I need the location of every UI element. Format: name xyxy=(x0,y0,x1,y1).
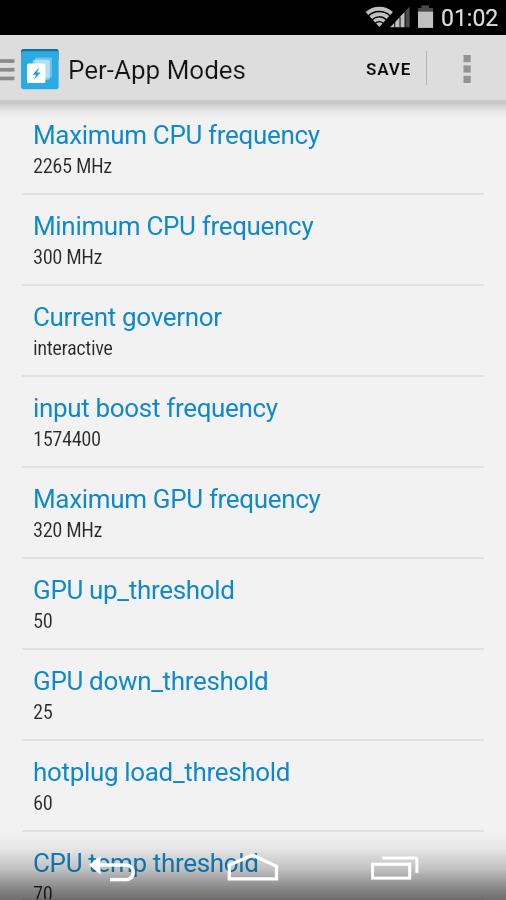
button[interactable]: Minimum CPU frequency xyxy=(0,194,506,285)
staticText: Per-App Modes xyxy=(68,55,247,85)
staticText: input boost frequency xyxy=(33,393,278,423)
button[interactable]: Maximum CPU frequency xyxy=(0,103,506,194)
staticText: Minimum CPU frequency xyxy=(33,211,314,241)
button[interactable]: GPU up_threshold xyxy=(0,558,506,649)
button[interactable]: Home xyxy=(169,831,338,900)
staticText: 01:02 xyxy=(441,5,499,32)
staticText: GPU up_threshold xyxy=(33,575,235,605)
staticText: hotplug load_threshold xyxy=(33,757,291,787)
button[interactable]: Maximum GPU frequency xyxy=(0,467,506,558)
button[interactable]: hotplug load_threshold xyxy=(0,740,506,831)
staticText: CPU temp threshold xyxy=(33,848,259,878)
button[interactable]: SAVE xyxy=(345,35,426,100)
staticText: 25 xyxy=(33,700,53,724)
staticText: SAVE xyxy=(366,59,412,79)
staticText: 70 xyxy=(33,882,53,900)
staticText: Current governor xyxy=(33,302,222,332)
button[interactable]: Back xyxy=(0,831,169,900)
button[interactable]: input boost frequency xyxy=(0,376,506,467)
staticText: 60 xyxy=(33,791,53,815)
staticText: GPU down_threshold xyxy=(33,666,269,696)
button[interactable]: Recent apps xyxy=(338,831,506,900)
staticText: 50 xyxy=(33,609,53,633)
staticText: 2265 MHz xyxy=(33,154,112,178)
button[interactable]: More options xyxy=(427,35,506,100)
staticText: 320 MHz xyxy=(33,518,103,542)
button[interactable]: Navigate up xyxy=(0,35,66,100)
staticText: interactive xyxy=(33,336,113,360)
staticText: Maximum CPU frequency xyxy=(33,120,320,150)
button[interactable]: Current governor xyxy=(0,285,506,376)
staticText: 1574400 xyxy=(33,427,101,451)
button[interactable]: CPU temp threshold xyxy=(0,831,506,900)
button[interactable]: GPU down_threshold xyxy=(0,649,506,740)
staticText: Maximum GPU frequency xyxy=(33,484,321,514)
staticText: 300 MHz xyxy=(33,245,103,269)
